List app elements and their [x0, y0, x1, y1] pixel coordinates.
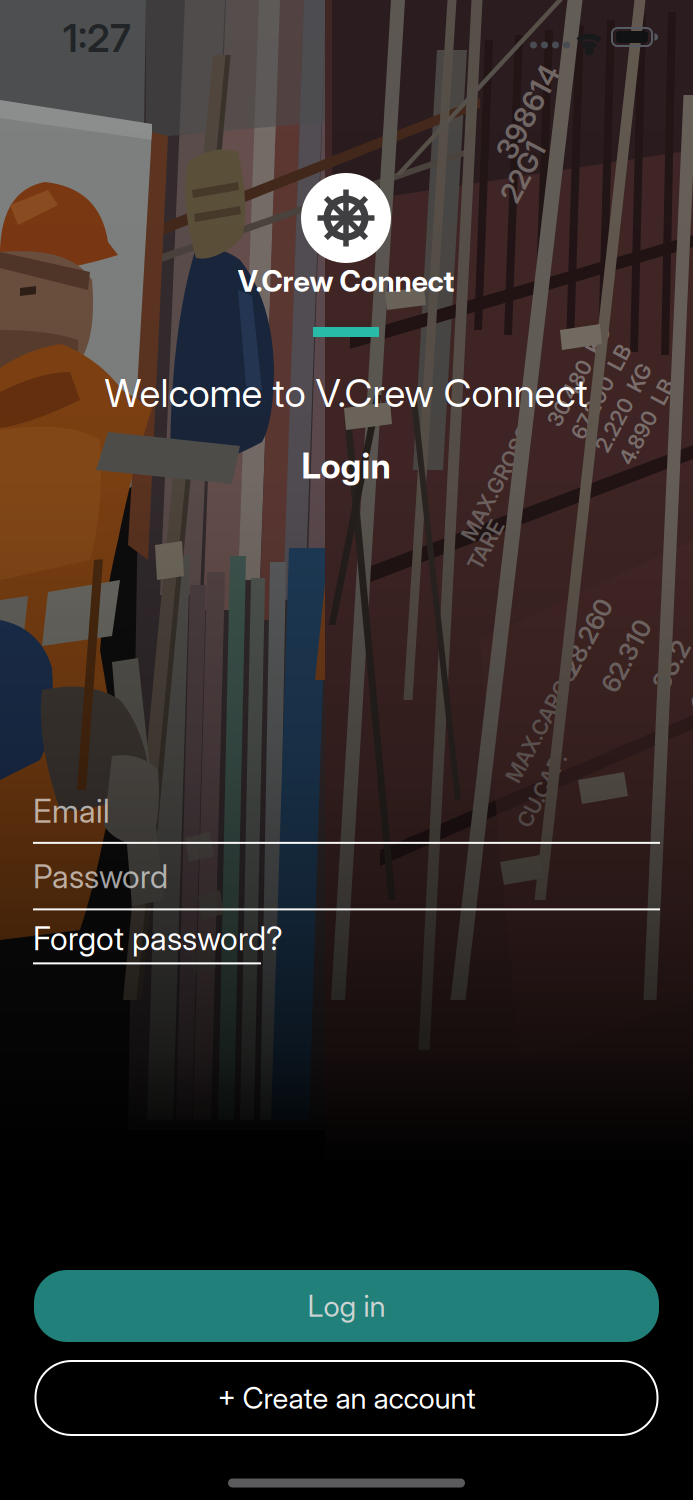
staticText: Welcome to V.Crew Connect: [104, 370, 587, 416]
staticText: 22G1: [491, 155, 555, 188]
button[interactable]: Password: [33, 858, 660, 910]
staticText: Log in: [307, 1289, 385, 1323]
staticText: 33.2: [634, 675, 686, 705]
staticText: Login: [301, 446, 390, 486]
staticText: 1:27: [63, 15, 131, 61]
button[interactable]: + Create an account: [35, 1361, 657, 1435]
staticText: 30.480 KG: [559, 342, 670, 367]
button[interactable]: Log in: [34, 1270, 659, 1342]
staticText: 4.890 LB: [559, 423, 653, 448]
staticText: 62.310: [608, 631, 686, 661]
staticText: Forgot password?: [33, 920, 283, 957]
staticText: TARE: [459, 532, 512, 558]
staticText: 67.200 LB: [559, 369, 663, 394]
staticText: CU.CAP.: [501, 777, 582, 803]
staticText: Password: [33, 858, 168, 895]
staticText: MAX.GROSS: [433, 470, 560, 496]
staticText: V.Crew Connect: [237, 264, 454, 298]
staticText: 1.170: [634, 719, 686, 749]
staticText: 2.220 KG: [559, 396, 656, 421]
staticText: MAX.CARGO: [477, 711, 606, 737]
button[interactable]: Forgot password?: [33, 920, 660, 964]
button[interactable]: Email: [33, 792, 660, 844]
staticText: 28.260: [604, 587, 686, 617]
staticText: Email: [33, 792, 110, 830]
staticText: + Create an account: [217, 1381, 475, 1415]
staticText: 398614: [477, 95, 579, 129]
